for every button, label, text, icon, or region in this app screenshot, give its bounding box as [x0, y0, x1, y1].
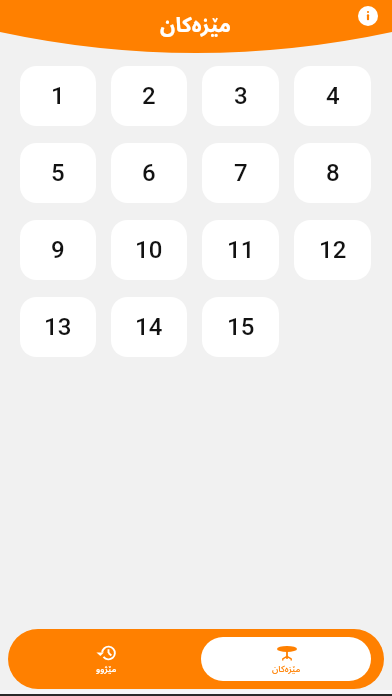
- button[interactable]: 4: [294, 66, 371, 126]
- staticText: مێزەکان: [272, 660, 301, 679]
- staticText: 8: [326, 159, 340, 187]
- staticText: 15: [227, 313, 255, 341]
- staticText: 10: [135, 236, 163, 264]
- staticText: مێزەکان: [160, 3, 232, 47]
- staticText: 12: [319, 236, 347, 264]
- button[interactable]: 7: [202, 143, 279, 203]
- staticText: 1: [51, 82, 65, 110]
- button[interactable]: 6: [111, 143, 187, 203]
- button[interactable]: 2: [111, 66, 187, 126]
- button[interactable]: 3: [202, 66, 279, 126]
- button[interactable]: 8: [294, 143, 371, 203]
- button[interactable]: 9: [20, 220, 96, 280]
- staticText: 4: [326, 82, 340, 110]
- button[interactable]: 13: [20, 297, 96, 357]
- staticText: مێژوو: [96, 660, 117, 679]
- staticText: 2: [142, 82, 156, 110]
- staticText: 14: [135, 313, 163, 341]
- button[interactable]: 5: [20, 143, 96, 203]
- staticText: 9: [51, 236, 65, 264]
- button[interactable]: مێژوو: [16, 637, 196, 681]
- button[interactable]: 10: [111, 220, 187, 280]
- button[interactable]: 1: [20, 66, 96, 126]
- staticText: 13: [44, 313, 72, 341]
- staticText: 5: [51, 159, 65, 187]
- button[interactable]: 12: [294, 220, 371, 280]
- button[interactable]: Info: [358, 6, 378, 26]
- button[interactable]: مێزەکان: [201, 637, 371, 681]
- staticText: 6: [142, 159, 156, 187]
- button[interactable]: 15: [202, 297, 279, 357]
- staticText: 11: [227, 236, 255, 264]
- button[interactable]: 14: [111, 297, 187, 357]
- staticText: 7: [234, 159, 248, 187]
- staticText: 3: [234, 82, 248, 110]
- button[interactable]: 11: [202, 220, 279, 280]
